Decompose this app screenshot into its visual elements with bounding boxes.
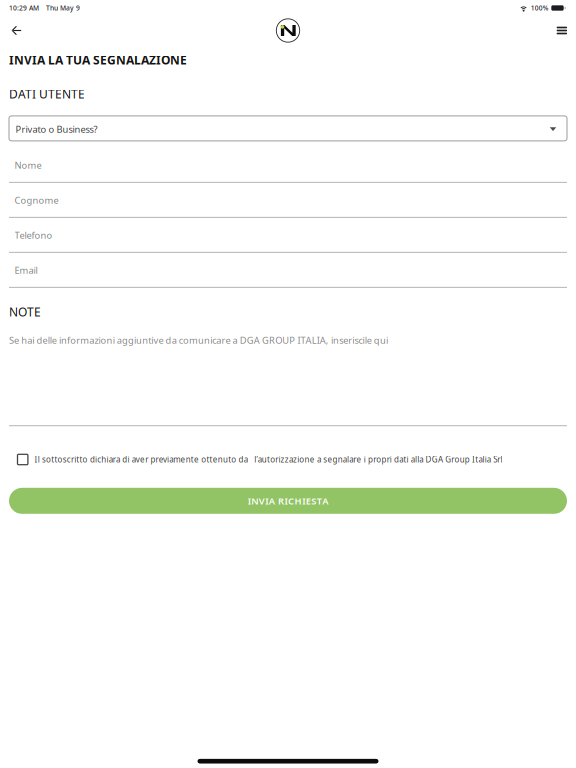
button[interactable]: Menu xyxy=(541,16,576,44)
staticText: INVIA LA TUA SEGNALAZIONE xyxy=(9,52,187,68)
button[interactable]: Cognome xyxy=(9,183,567,218)
staticText: Se hai delle informazioni aggiuntive da … xyxy=(9,334,388,346)
staticText: Thu May 9 xyxy=(46,4,80,12)
staticText: 100% xyxy=(531,4,549,12)
button[interactable]: INVIA RICHIESTA xyxy=(9,488,567,514)
staticText: Privato o Business? xyxy=(15,123,97,135)
staticText: Cognome xyxy=(14,194,58,206)
button[interactable]: Nome xyxy=(9,141,567,183)
staticText: Nome xyxy=(14,159,41,171)
staticText: Email xyxy=(14,264,37,276)
button[interactable]: Back xyxy=(0,16,37,44)
button[interactable]: Email xyxy=(9,253,567,288)
button[interactable]: Privato o Business? xyxy=(9,116,567,141)
button[interactable]: Telefono xyxy=(9,218,567,253)
staticText: Telefono xyxy=(14,229,52,241)
staticText: 10:29 AM xyxy=(9,4,39,12)
staticText: DATI UTENTE xyxy=(9,86,85,102)
staticText: INVIA RICHIESTA xyxy=(248,495,328,507)
button[interactable]: Accetto l'informativa xyxy=(9,454,34,465)
staticText: Il sottoscritto dichiara di aver previam… xyxy=(34,454,502,465)
staticText: NOTE xyxy=(9,304,41,320)
